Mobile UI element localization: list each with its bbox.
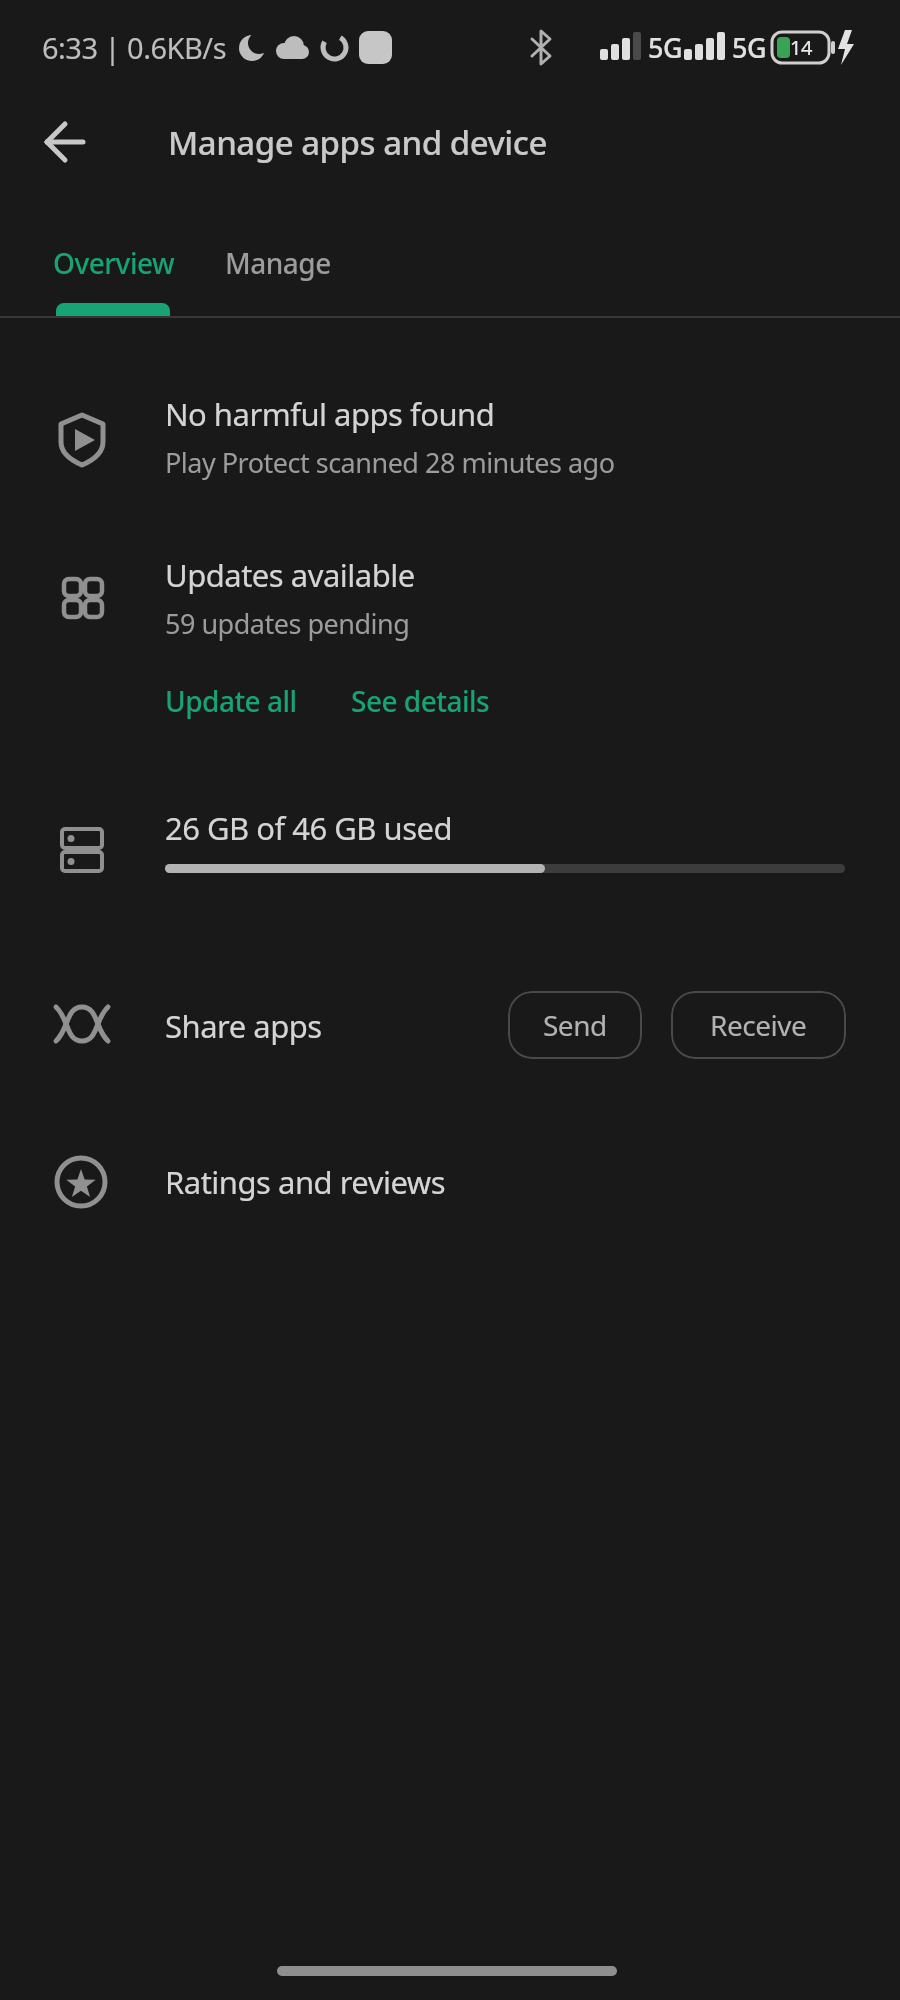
staticText: Updates available	[165, 554, 415, 596]
button[interactable]	[0, 790, 900, 900]
button[interactable]: Manage	[212, 228, 344, 298]
button[interactable]	[0, 540, 900, 660]
staticText: 6:33 | 0.6KB/s	[42, 28, 227, 67]
staticText: 26 GB of 46 GB used	[165, 807, 453, 849]
staticText: Receive	[710, 1006, 807, 1044]
button[interactable]: Send	[508, 991, 642, 1059]
staticText: See details	[351, 682, 490, 720]
button[interactable]: See details	[351, 671, 490, 731]
staticText: 14	[790, 34, 812, 61]
staticText: Share apps	[165, 1005, 322, 1047]
staticText: Update all	[165, 682, 297, 720]
button[interactable]: Receive	[671, 991, 846, 1059]
button[interactable]	[0, 370, 900, 510]
staticText: 59 updates pending	[165, 605, 410, 642]
staticText: Manage	[225, 244, 331, 282]
staticText: No harmful apps found	[165, 393, 495, 435]
button[interactable]	[30, 107, 100, 177]
staticText: Overview	[53, 244, 175, 282]
button[interactable]: Update all	[165, 671, 297, 731]
staticText: Ratings and reviews	[165, 1161, 446, 1203]
button[interactable]: Overview	[40, 228, 188, 298]
staticText: Play Protect scanned 28 minutes ago	[165, 444, 615, 481]
staticText: 5G	[648, 29, 683, 66]
staticText: Send	[543, 1006, 607, 1044]
button[interactable]	[0, 1120, 900, 1244]
staticText: Manage apps and device	[168, 120, 547, 165]
staticText: 5G	[732, 29, 767, 66]
